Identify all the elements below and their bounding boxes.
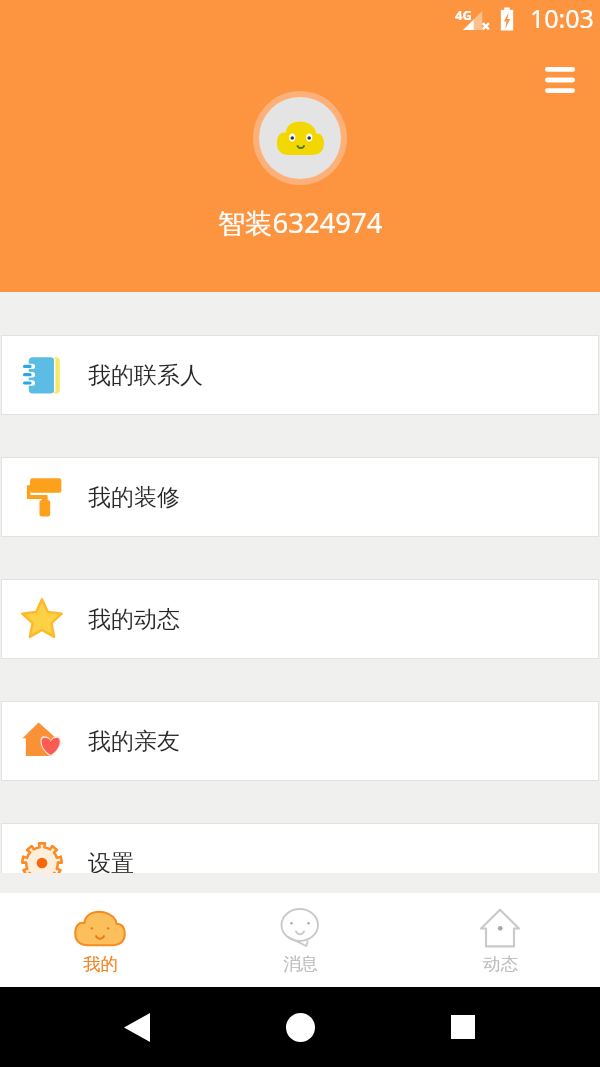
button[interactable]: 设置 <box>1 823 599 873</box>
button[interactable]: Menu <box>536 56 584 104</box>
button[interactable]: 动态 <box>400 893 600 987</box>
staticText: 智装6324974 <box>0 204 600 242</box>
button[interactable]: 我的联系人 <box>1 335 599 415</box>
button[interactable]: 我的装修 <box>1 457 599 537</box>
staticText: 4G <box>455 6 472 24</box>
staticText: 消息 <box>283 953 318 975</box>
button[interactable]: Avatar <box>253 91 347 185</box>
button[interactable]: 我的亲友 <box>1 701 599 781</box>
staticText: 10:03 <box>530 1 594 35</box>
button[interactable]: Back <box>111 1001 163 1053</box>
staticText: 动态 <box>483 953 518 975</box>
button[interactable]: Recents <box>437 1001 489 1053</box>
staticText: 我的动态 <box>88 605 180 634</box>
staticText: 我的 <box>83 953 118 975</box>
button[interactable]: 消息 <box>200 893 400 987</box>
button[interactable]: 我的动态 <box>1 579 599 659</box>
staticText: 我的装修 <box>88 483 180 512</box>
staticText: 设置 <box>88 849 134 873</box>
staticText: 我的亲友 <box>88 727 180 756</box>
other: Battery <box>500 7 514 31</box>
button[interactable]: 我的 <box>0 893 200 987</box>
staticText: 我的联系人 <box>88 361 203 390</box>
button[interactable]: Home <box>274 1001 326 1053</box>
